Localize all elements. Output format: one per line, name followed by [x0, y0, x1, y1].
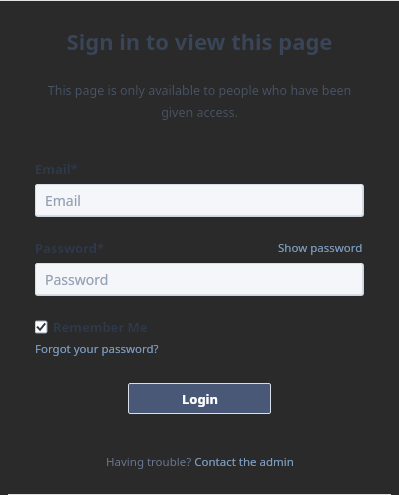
button[interactable]: Password [35, 263, 363, 295]
other: Remember Me checkbox [35, 321, 47, 333]
button[interactable]: Forgot your password? [35, 341, 159, 357]
button[interactable]: Having trouble? Contact the admin [106, 454, 294, 470]
staticText: Show password [278, 240, 363, 256]
button[interactable]: Email [35, 184, 363, 216]
staticText: Having trouble? Contact the admin [106, 454, 294, 470]
staticText: This page is only available to people wh… [35, 82, 364, 121]
button[interactable]: Show password [277, 239, 364, 257]
staticText: Password [45, 270, 109, 289]
staticText: Email* [35, 160, 78, 178]
staticText: Password* [35, 239, 104, 257]
button[interactable]: Login [129, 384, 270, 413]
staticText: Email [45, 191, 81, 210]
staticText: Sign in to view this page [35, 26, 364, 56]
staticText: Login [182, 390, 218, 408]
staticText: Forgot your password? [35, 341, 159, 357]
staticText: Remember Me [53, 318, 148, 336]
button[interactable]: Remember Me checkbox [35, 317, 148, 337]
